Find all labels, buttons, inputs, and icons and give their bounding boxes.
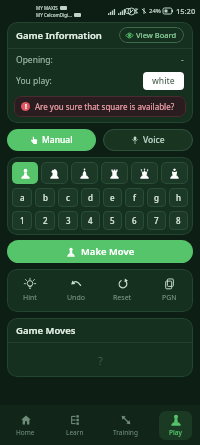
staticText: - <box>181 54 184 66</box>
button[interactable]: b <box>35 188 55 207</box>
staticText: f <box>133 192 136 203</box>
button[interactable]: h <box>169 188 188 207</box>
button[interactable]: e <box>103 188 122 207</box>
button[interactable]: white <box>143 72 184 90</box>
staticText: 15:20 <box>176 6 196 16</box>
button[interactable]: Hint <box>7 276 53 305</box>
button[interactable]: Knight <box>41 162 68 184</box>
staticText: b <box>43 192 48 203</box>
staticText: View Board <box>136 30 177 40</box>
staticText: Game Information <box>16 29 102 42</box>
button[interactable]: 4 <box>81 211 100 230</box>
staticText: 4 <box>88 215 93 226</box>
staticText: Training <box>113 428 138 437</box>
button[interactable]: 7 <box>147 211 166 230</box>
staticText: Undo <box>67 293 85 303</box>
button[interactable]: 2 <box>35 211 55 230</box>
staticText: You play: <box>16 75 52 87</box>
staticText: Learn <box>66 428 84 437</box>
button[interactable]: 8 <box>169 211 188 230</box>
button[interactable]: 3 <box>58 211 78 230</box>
button[interactable]: Pawn <box>12 162 38 184</box>
button[interactable]: c <box>58 188 78 207</box>
button[interactable]: Voice <box>103 129 193 151</box>
button[interactable]: Make Move <box>7 240 193 263</box>
staticText: 5 <box>110 215 115 226</box>
staticText: ! <box>25 102 27 111</box>
button[interactable]: Manual <box>7 129 96 151</box>
button[interactable]: Play <box>150 405 200 445</box>
button[interactable]: Reset <box>99 276 146 305</box>
staticText: 6 <box>132 215 137 226</box>
staticText: Play <box>169 428 182 437</box>
button[interactable]: Training <box>100 405 150 445</box>
button[interactable]: Queen <box>131 162 158 184</box>
button[interactable]: 6 <box>125 211 144 230</box>
staticText: Game Moves <box>16 324 76 337</box>
staticText: Opening: <box>16 54 53 66</box>
button[interactable]: f <box>125 188 144 207</box>
staticText: ? <box>98 353 103 368</box>
button[interactable]: g <box>147 188 166 207</box>
staticText: Voice <box>143 134 165 146</box>
staticText: Home <box>16 428 35 437</box>
staticText: 8 <box>176 215 181 226</box>
button[interactable]: King <box>161 162 188 184</box>
button[interactable]: 1 <box>12 211 32 230</box>
staticText: MY CelcomDigi... <box>36 12 72 18</box>
button[interactable]: Learn <box>50 405 100 445</box>
staticText: 1 <box>20 215 25 226</box>
staticText: h <box>176 192 182 203</box>
staticText: 24% <box>149 7 161 15</box>
staticText: Manual <box>42 134 73 146</box>
staticText: Are you sure that square is available? <box>35 101 175 112</box>
button[interactable]: Home <box>0 405 50 445</box>
staticText: Make Move <box>81 245 135 258</box>
staticText: Hint <box>23 293 37 303</box>
staticText: PGN <box>162 293 177 303</box>
button[interactable]: Bishop <box>71 162 98 184</box>
staticText: MY MAXIS <box>36 5 58 11</box>
staticText: e <box>110 192 115 203</box>
button[interactable]: 5 <box>103 211 122 230</box>
staticText: c <box>66 192 70 203</box>
staticText: white <box>152 75 175 87</box>
button[interactable]: a <box>12 188 32 207</box>
button[interactable]: View Board <box>119 27 184 43</box>
staticText: 3 <box>66 215 71 226</box>
staticText: Reset <box>113 293 132 303</box>
button[interactable]: Undo <box>53 276 99 305</box>
staticText: g <box>154 192 159 203</box>
staticText: 7 <box>154 215 159 226</box>
button[interactable]: PGN <box>146 276 193 305</box>
button[interactable]: Rook <box>101 162 128 184</box>
staticText: d <box>88 192 93 203</box>
staticText: 2 <box>43 215 48 226</box>
button[interactable]: d <box>81 188 100 207</box>
staticText: a <box>20 192 25 203</box>
